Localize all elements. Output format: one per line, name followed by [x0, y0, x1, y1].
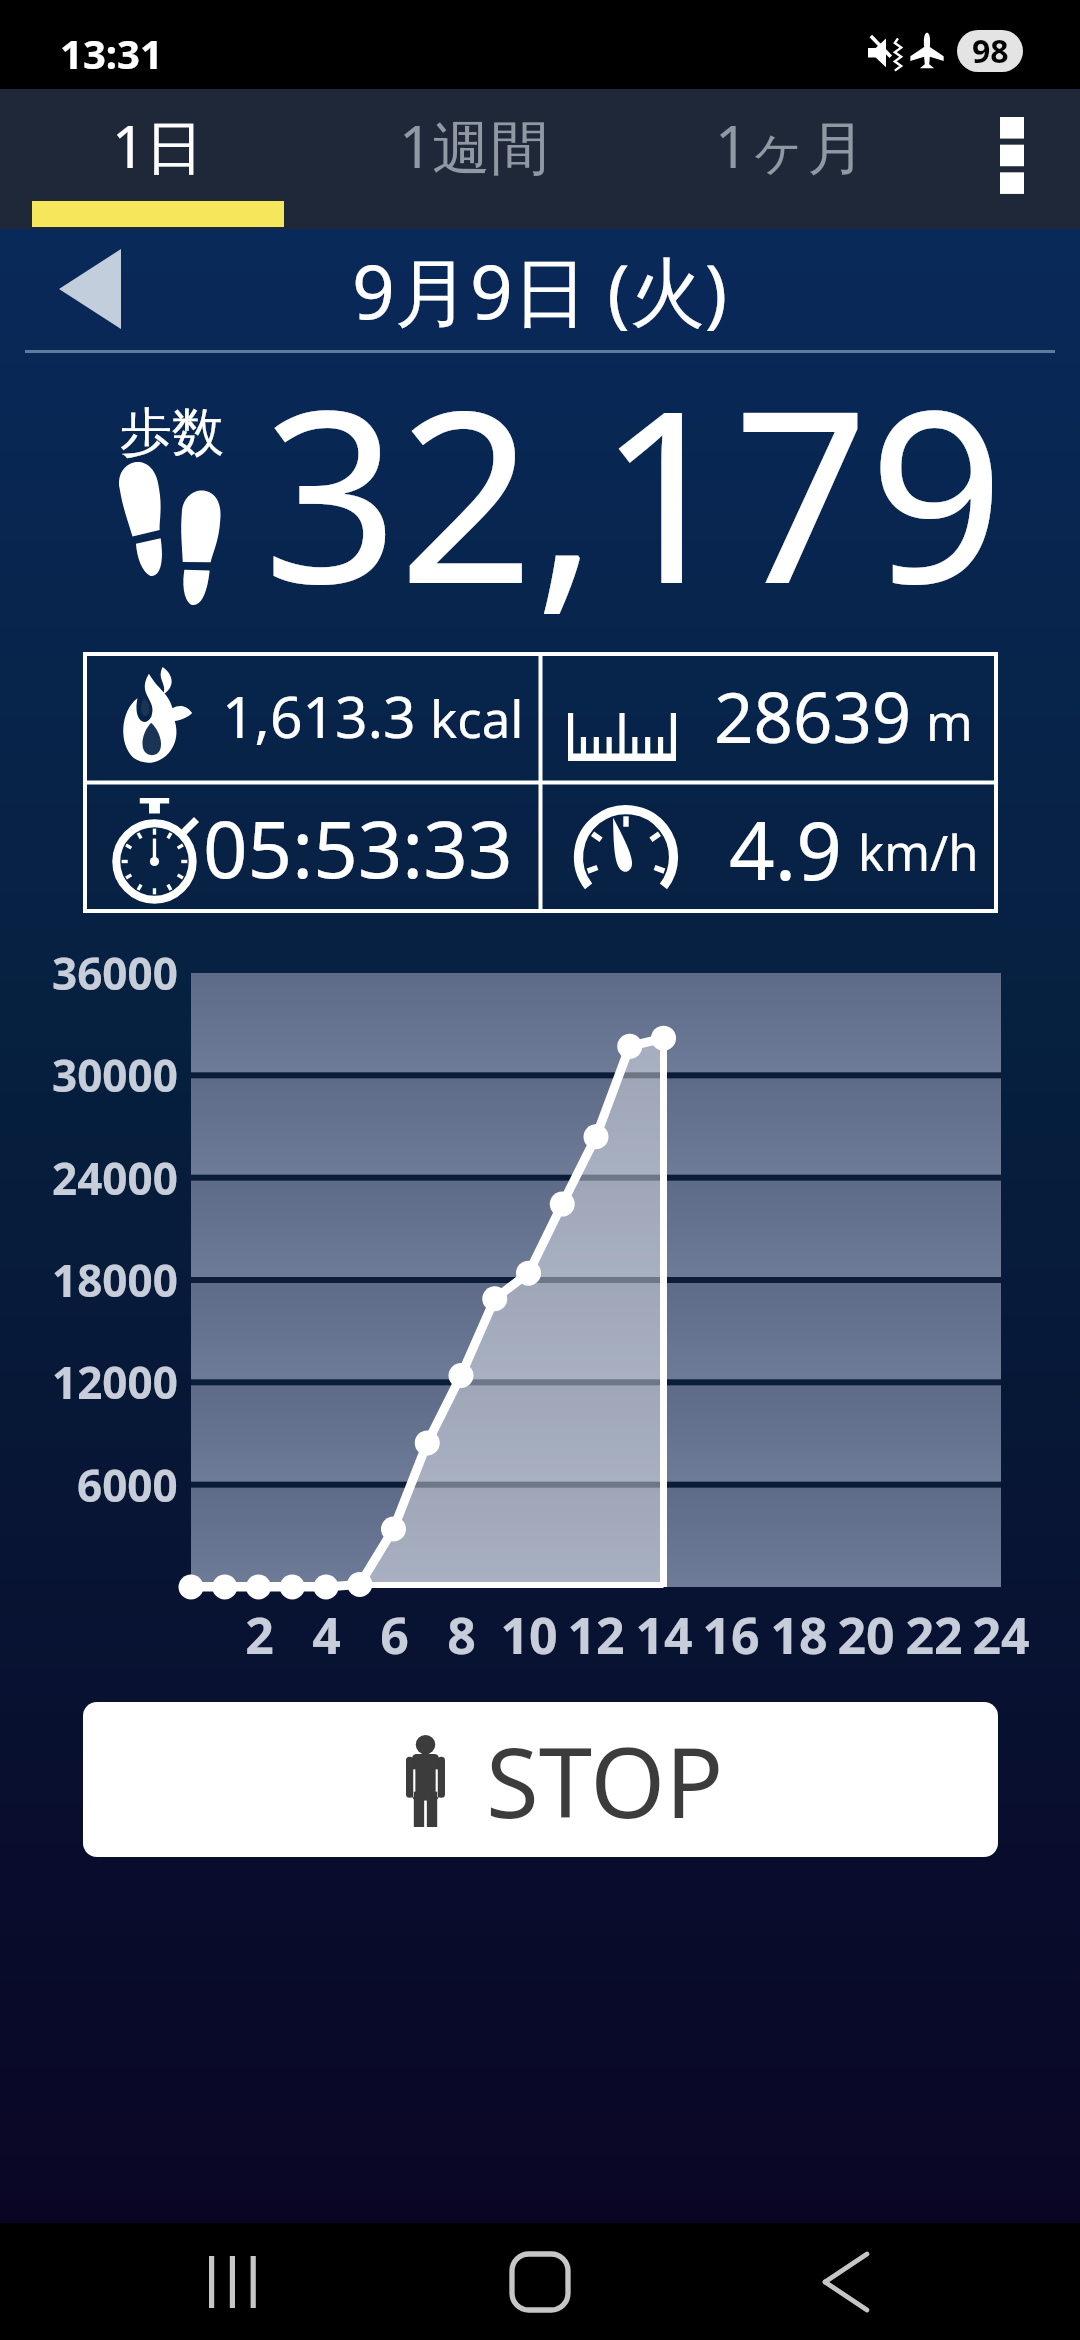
staticText: 6000 — [77, 1455, 178, 1515]
button[interactable]: Previous day — [30, 239, 150, 339]
staticText: 1ヶ月 — [715, 106, 866, 185]
button[interactable]: 4.9 — [540, 783, 998, 913]
staticText: 6 — [380, 1601, 409, 1669]
staticText: 30000 — [52, 1045, 178, 1105]
staticText: 22 — [905, 1601, 963, 1669]
staticText: 18000 — [52, 1250, 178, 1310]
staticText: 24 — [972, 1601, 1030, 1669]
staticText: 10 — [500, 1601, 558, 1669]
staticText: 28639 — [714, 669, 912, 763]
staticText: km/h — [858, 819, 979, 886]
staticText: 18 — [770, 1601, 828, 1669]
button[interactable]: More options — [948, 89, 1080, 229]
button[interactable]: 1日 — [0, 89, 316, 229]
staticText: 20 — [837, 1601, 895, 1669]
staticText: 1,613.3 — [222, 677, 416, 755]
staticText: 4 — [312, 1601, 341, 1669]
button[interactable]: Home — [480, 2223, 600, 2340]
staticText: 1週間 — [399, 106, 549, 185]
button[interactable]: STOP — [83, 1702, 998, 1857]
staticText: 36000 — [52, 943, 178, 1003]
staticText: 32,179 — [263, 330, 1005, 653]
staticText: 歩数 — [120, 400, 224, 466]
button[interactable]: 1,613.3 — [83, 652, 538, 780]
button[interactable]: 1週間 — [316, 89, 632, 229]
staticText: 12000 — [52, 1352, 178, 1412]
staticText: kcal — [430, 683, 524, 752]
staticText: 1日 — [112, 106, 204, 185]
staticText: 9月9日 (火) — [352, 239, 728, 339]
button[interactable]: 1ヶ月 — [632, 89, 948, 229]
staticText: 4.9 — [729, 794, 842, 903]
staticText: 98 — [972, 30, 1009, 71]
staticText: 24000 — [52, 1148, 178, 1208]
staticText: 8 — [447, 1601, 476, 1669]
button[interactable]: 05:53:33 — [83, 783, 538, 913]
button[interactable]: Recents — [175, 2223, 295, 2340]
staticText: 14 — [635, 1601, 693, 1669]
staticText: 16 — [702, 1601, 760, 1669]
staticText: 12 — [567, 1601, 625, 1669]
button[interactable]: Back — [785, 2223, 905, 2340]
staticText: STOP — [486, 1715, 724, 1846]
staticText: 13:31 — [60, 26, 163, 80]
staticText: m — [926, 688, 973, 756]
staticText: 05:53:33 — [203, 795, 513, 901]
button[interactable]: 28639 — [540, 652, 998, 780]
staticText: 2 — [245, 1601, 274, 1669]
